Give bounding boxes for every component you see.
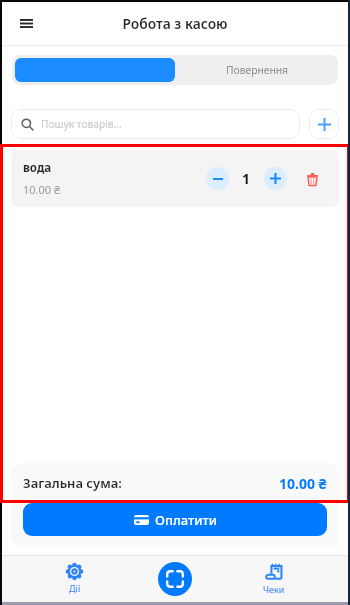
staticText: Повернення <box>226 63 288 77</box>
button[interactable]: Повернення <box>175 55 338 85</box>
staticText: Робота з касою <box>122 14 228 33</box>
button[interactable] <box>15 58 175 82</box>
staticText: 10.00 ₴ <box>279 474 327 493</box>
staticText: 1 <box>242 169 251 188</box>
staticText: вода <box>23 160 52 176</box>
button[interactable]: Add product <box>309 109 339 139</box>
button[interactable]: Increase quantity <box>264 167 287 190</box>
staticText: Загальна сума: <box>23 474 122 492</box>
staticText: Чеки <box>263 583 285 595</box>
button[interactable]: Scan barcode <box>158 562 192 596</box>
button[interactable]: Дії <box>35 555 114 602</box>
button[interactable]: Decrease quantity <box>206 167 229 190</box>
button[interactable]: вода <box>11 150 339 207</box>
button[interactable]: Menu <box>12 9 40 37</box>
staticText: Пошук товарів... <box>41 117 122 131</box>
button[interactable]: Чеки <box>234 555 313 602</box>
staticText: Оплатити <box>155 511 217 529</box>
button[interactable]: Delete item <box>300 167 324 191</box>
staticText: Дії <box>69 582 81 594</box>
button[interactable]: Пошук товарів... <box>11 109 300 139</box>
button[interactable]: Оплатити <box>23 503 327 536</box>
staticText: 10.00 ₴ <box>23 182 61 197</box>
